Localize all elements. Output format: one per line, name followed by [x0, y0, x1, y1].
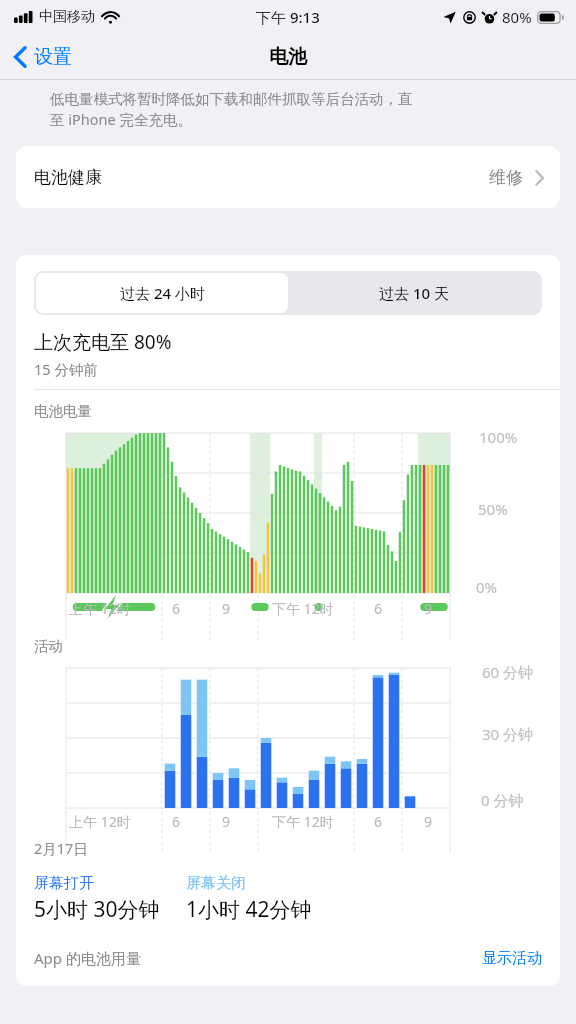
staticText: 0%: [476, 577, 498, 597]
staticText: 0 分钟: [481, 790, 524, 810]
button[interactable]: 过去 10 天: [288, 273, 540, 313]
staticText: 显示活动: [482, 949, 542, 968]
staticText: 9: [424, 599, 433, 618]
staticText: App 的电池用量: [34, 948, 141, 968]
staticText: 上午 12时: [69, 599, 131, 618]
staticText: 1小时 42分钟: [186, 895, 312, 924]
staticText: 维修: [489, 167, 523, 188]
staticText: 9: [424, 812, 433, 831]
staticText: 过去 24 小时: [120, 283, 205, 303]
staticText: 上次充电至 80%: [34, 329, 172, 355]
button[interactable]: 设置: [0, 39, 84, 75]
staticText: 60 分钟: [482, 662, 534, 682]
staticText: 50%: [478, 499, 508, 519]
staticText: 80%: [502, 7, 532, 27]
staticText: 9: [222, 812, 231, 831]
button[interactable]: 过去 24 小时: [36, 273, 288, 313]
staticText: 电池电量: [34, 402, 92, 420]
staticText: 活动: [34, 637, 63, 655]
staticText: 电池健康: [34, 167, 102, 188]
staticText: 6: [374, 812, 383, 831]
staticText: 上午 12时: [69, 812, 131, 831]
staticText: 30 分钟: [482, 724, 534, 744]
staticText: 设置: [34, 45, 72, 69]
staticText: 电池: [269, 45, 307, 69]
staticText: 下午 12时: [272, 812, 334, 831]
staticText: 6: [172, 812, 181, 831]
staticText: 5小时 30分钟: [34, 895, 160, 924]
staticText: 下午 12时: [272, 599, 334, 618]
staticText: 过去 10 天: [379, 283, 449, 303]
staticText: 中国移动: [39, 8, 95, 26]
staticText: 2月17日: [34, 838, 88, 858]
button[interactable]: 显示活动: [482, 949, 542, 968]
staticText: 屏幕打开: [34, 874, 94, 893]
staticText: 下午 9:13: [256, 7, 320, 27]
staticText: 15 分钟前: [34, 359, 98, 379]
staticText: 屏幕关闭: [186, 874, 246, 893]
staticText: 6: [374, 599, 383, 618]
staticText: 9: [222, 599, 231, 618]
button[interactable]: 电池健康: [16, 146, 560, 208]
staticText: 6: [172, 599, 181, 618]
staticText: 100%: [479, 427, 518, 447]
staticText: 低电量模式将暂时降低如下载和邮件抓取等后台活动，直 至 iPhone 完全充电。: [50, 90, 413, 130]
